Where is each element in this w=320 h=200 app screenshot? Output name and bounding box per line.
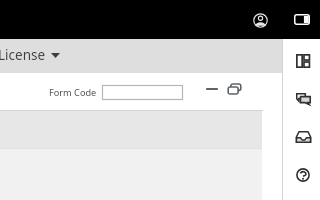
- button[interactable]: Account: [251, 11, 269, 29]
- button[interactable]: Minimize: [203, 80, 220, 97]
- button[interactable]: Help: [293, 165, 313, 185]
- staticText: Form Code: [49, 86, 97, 99]
- button[interactable]: Toggle side panel: [293, 10, 311, 28]
- staticText: License: [0, 46, 46, 64]
- button[interactable]: Inbox: [293, 127, 313, 147]
- button[interactable]: [102, 85, 183, 100]
- button[interactable]: License: [0, 46, 60, 64]
- button[interactable]: Restore window: [226, 81, 243, 98]
- button[interactable]: Messages: [293, 89, 313, 109]
- button[interactable]: Dashboard: [293, 51, 313, 71]
